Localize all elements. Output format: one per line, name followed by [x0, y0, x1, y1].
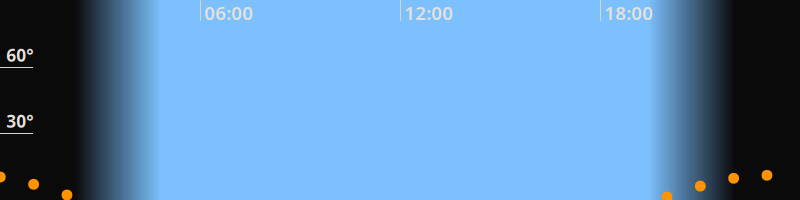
staticText: 18:00	[604, 0, 653, 25]
staticText: 12:00	[404, 0, 453, 25]
staticText: 06:00	[204, 0, 253, 25]
staticText: 30°	[6, 109, 33, 132]
staticText: 60°	[6, 43, 33, 66]
